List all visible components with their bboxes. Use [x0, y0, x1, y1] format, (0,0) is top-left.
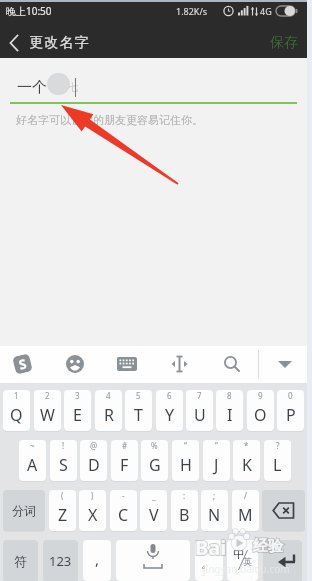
staticText: N: [208, 504, 221, 526]
staticText: X: [88, 504, 98, 526]
button[interactable]: 3: [64, 390, 91, 431]
staticText: 经验: [253, 537, 283, 556]
button[interactable]: :: [171, 490, 198, 531]
staticText: S: [17, 354, 29, 374]
button[interactable]: [262, 490, 305, 531]
button[interactable]: 4: [95, 390, 122, 431]
staticText: -: [122, 490, 125, 501]
staticText: 2: [45, 390, 50, 401]
button[interactable]: 9: [247, 390, 274, 431]
staticText: 4: [106, 390, 111, 401]
button[interactable]: 符: [3, 540, 38, 581]
button[interactable]: 6: [156, 390, 183, 431]
staticText: 8: [227, 390, 232, 401]
staticText: D: [88, 454, 100, 476]
staticText: 9: [258, 390, 263, 401]
button[interactable]: 7: [186, 390, 213, 431]
staticText: 4G: [260, 5, 272, 17]
button[interactable]: 8: [216, 390, 243, 431]
button[interactable]: ,: [83, 540, 111, 581]
staticText: “: [184, 440, 187, 451]
button[interactable]: ;: [201, 490, 228, 531]
staticText: W: [40, 404, 55, 426]
staticText: C: [118, 504, 129, 526]
staticText: 0: [288, 390, 293, 401]
staticText: _: [152, 490, 156, 501]
button[interactable]: [117, 354, 137, 374]
staticText: 好名字可以让你的朋友更容易记住你。: [16, 113, 203, 127]
staticText: 符: [14, 553, 27, 569]
staticText: T: [134, 404, 143, 426]
button[interactable]: [263, 540, 302, 581]
staticText: @: [90, 440, 98, 451]
staticText: 123: [49, 552, 72, 570]
staticText: Bai: [195, 534, 227, 561]
staticText: 。: [201, 555, 214, 571]
button[interactable]: 0: [277, 390, 304, 431]
button[interactable]: !: [50, 440, 77, 481]
staticText: 3: [75, 390, 80, 401]
button[interactable]: ?: [264, 440, 291, 481]
button[interactable]: [116, 540, 190, 581]
button[interactable]: 分词: [3, 490, 45, 531]
staticText: L: [273, 454, 282, 476]
staticText: 7: [197, 390, 202, 401]
staticText: F: [120, 454, 129, 476]
button[interactable]: ~: [19, 440, 46, 481]
button[interactable]: (: [49, 490, 76, 531]
button[interactable]: 2: [34, 390, 61, 431]
button[interactable]: /: [232, 490, 259, 531]
staticText: G: [149, 454, 161, 476]
button[interactable]: 1: [3, 390, 30, 431]
staticText: 保存: [270, 34, 298, 52]
staticText: 中: [233, 546, 245, 561]
button[interactable]: 保存: [262, 30, 306, 56]
staticText: /: [244, 490, 247, 501]
button[interactable]: ”: [203, 440, 230, 481]
staticText: K: [242, 454, 252, 476]
staticText: O: [254, 404, 267, 426]
staticText: I: [227, 404, 233, 426]
button[interactable]: ): [79, 490, 106, 531]
staticText: M: [238, 504, 253, 526]
staticText: ,: [95, 549, 100, 569]
button[interactable]: _: [140, 490, 167, 531]
staticText: ~: [30, 440, 35, 451]
button[interactable]: 123: [43, 540, 78, 581]
staticText: jingyan.baidu.com: [203, 562, 290, 576]
staticText: Z: [58, 504, 68, 526]
staticText: Bai: [195, 534, 227, 561]
button[interactable]: 5: [125, 390, 152, 431]
button[interactable]: [275, 354, 295, 374]
staticText: Y: [165, 404, 175, 426]
staticText: ”: [215, 440, 218, 451]
staticText: P: [286, 404, 296, 426]
staticText: J: [214, 454, 219, 476]
staticText: (: [61, 490, 64, 501]
button[interactable]: “: [172, 440, 199, 481]
staticText: !: [62, 440, 65, 451]
staticText: 分词: [12, 503, 36, 518]
button[interactable]: S: [12, 354, 32, 374]
button[interactable]: 。: [195, 540, 223, 581]
button[interactable]: #: [111, 440, 138, 481]
staticText: V: [149, 504, 159, 526]
staticText: 1: [14, 390, 19, 401]
button[interactable]: %: [141, 440, 168, 481]
staticText: ;: [213, 490, 216, 501]
staticText: 更改名字: [29, 34, 89, 52]
staticText: S: [59, 454, 68, 476]
staticText: 1.82K/s: [176, 5, 208, 17]
staticText: #: [122, 440, 128, 451]
button[interactable]: [222, 354, 242, 374]
button[interactable]: [169, 354, 190, 375]
button[interactable]: *: [233, 440, 260, 481]
button[interactable]: -: [110, 490, 137, 531]
button[interactable]: [0, 28, 28, 58]
button[interactable]: @: [80, 440, 107, 481]
staticText: %: [151, 440, 158, 451]
button[interactable]: [65, 354, 85, 374]
button[interactable]: 中: [227, 540, 258, 581]
staticText: 6: [167, 390, 172, 401]
staticText: Q: [10, 404, 23, 426]
